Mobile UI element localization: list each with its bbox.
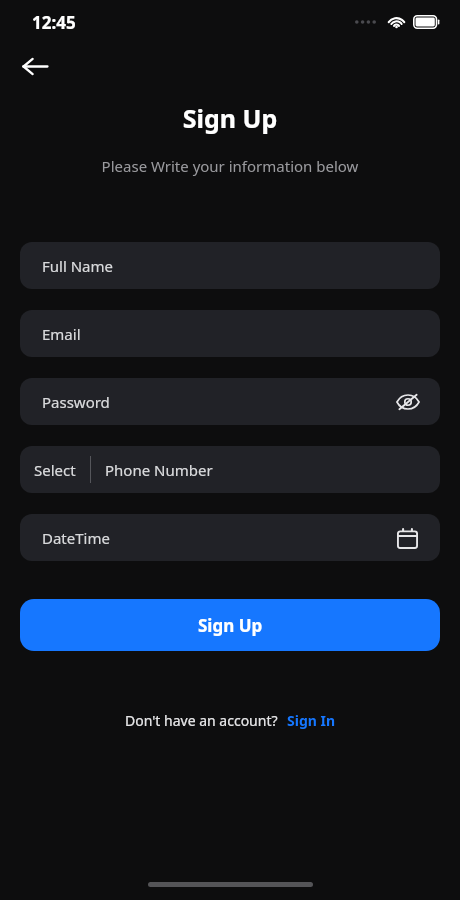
staticText: Email [42, 324, 81, 344]
staticText: Sign Up [198, 614, 263, 637]
staticText: Sign Up [0, 101, 460, 135]
staticText: Password [42, 392, 110, 412]
button[interactable]: Select [20, 446, 440, 493]
staticText: Full Name [42, 256, 113, 276]
staticText: Please Write your information below [0, 156, 460, 176]
button[interactable]: Show password [388, 382, 428, 422]
button[interactable]: Sign Up [20, 599, 440, 651]
staticText: Phone Number [105, 460, 213, 480]
button[interactable]: Sign In [287, 711, 336, 730]
button[interactable]: Email [20, 310, 440, 357]
staticText: 12:45 [32, 11, 76, 34]
staticText: Select [34, 460, 76, 480]
staticText: DateTime [42, 528, 110, 548]
staticText: Don't have an account? [125, 711, 278, 730]
button[interactable]: Password [20, 378, 440, 425]
staticText: Sign In [287, 711, 336, 730]
button[interactable]: Full Name [20, 242, 440, 289]
button[interactable]: Select [20, 446, 90, 493]
button[interactable]: DateTime [20, 514, 440, 561]
button[interactable]: Back [13, 44, 57, 88]
button[interactable]: Pick date [387, 518, 427, 558]
